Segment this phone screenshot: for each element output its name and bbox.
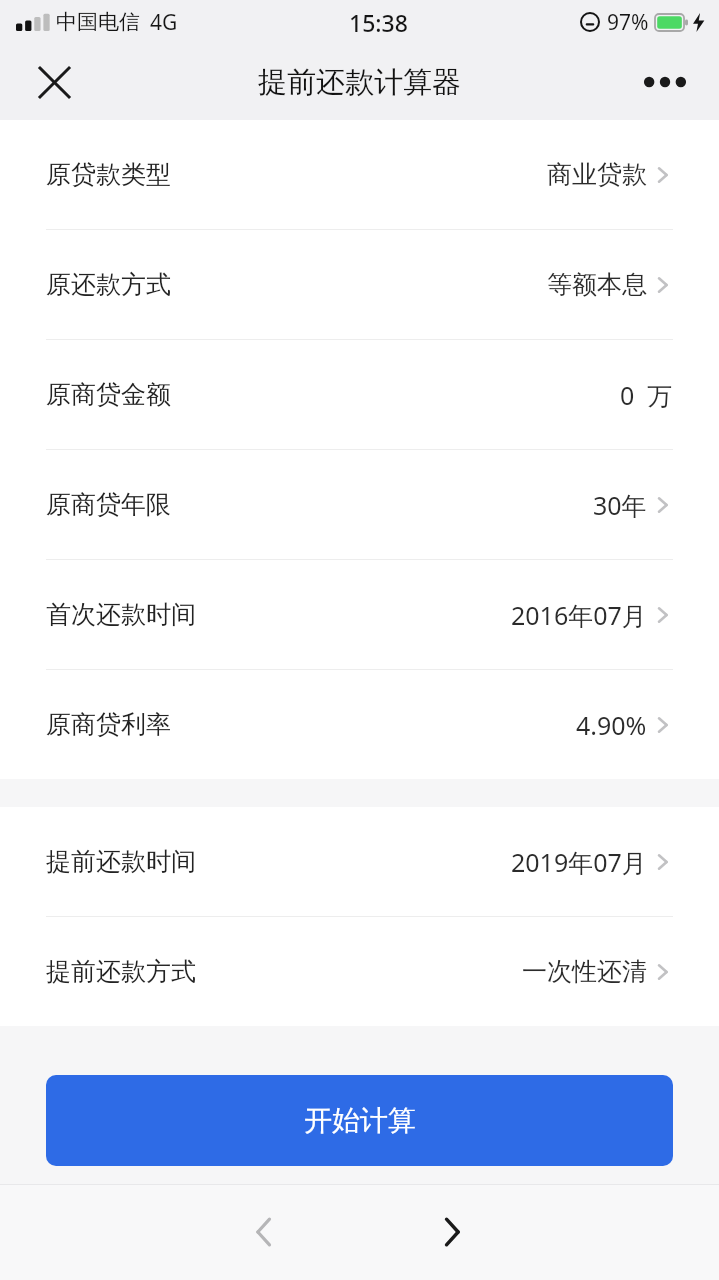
staticText: 中国电信 bbox=[56, 9, 140, 35]
staticText: 开始计算 bbox=[304, 1103, 416, 1138]
staticText: 原商贷金额 bbox=[46, 379, 171, 410]
staticText: 30年 bbox=[593, 488, 647, 522]
staticText: 一次性还清 bbox=[522, 956, 647, 987]
staticText: 97% bbox=[607, 8, 649, 37]
button[interactable]: 提前还款时间 bbox=[0, 807, 719, 916]
button[interactable]: More options bbox=[631, 48, 699, 116]
staticText: 原商贷利率 bbox=[46, 709, 171, 740]
staticText: 提前还款计算器 bbox=[258, 64, 461, 101]
button[interactable]: 提前还款方式 bbox=[0, 917, 719, 1026]
staticText: 原贷款类型 bbox=[46, 159, 171, 190]
staticText: 首次还款时间 bbox=[46, 599, 196, 630]
button[interactable]: Forward bbox=[416, 1196, 488, 1268]
staticText: 等额本息 bbox=[547, 269, 647, 300]
button[interactable]: Close bbox=[20, 48, 88, 116]
staticText: 原还款方式 bbox=[46, 269, 171, 300]
staticText: 0 万 bbox=[620, 378, 673, 412]
staticText: 4.90% bbox=[576, 708, 647, 742]
button[interactable]: 原商贷金额 bbox=[0, 340, 719, 449]
button[interactable]: 原贷款类型 bbox=[0, 120, 719, 229]
button[interactable]: Back bbox=[228, 1196, 300, 1268]
staticText: 2016年07月 bbox=[511, 598, 647, 632]
button[interactable]: 开始计算 bbox=[46, 1075, 673, 1166]
staticText: 15:38 bbox=[349, 7, 408, 38]
staticText: 商业贷款 bbox=[547, 159, 647, 190]
button[interactable]: 原商贷年限 bbox=[0, 450, 719, 559]
button[interactable]: 原商贷利率 bbox=[0, 670, 719, 779]
staticText: 2019年07月 bbox=[511, 845, 647, 879]
button[interactable]: 首次还款时间 bbox=[0, 560, 719, 669]
button[interactable]: 原还款方式 bbox=[0, 230, 719, 339]
staticText: 原商贷年限 bbox=[46, 489, 171, 520]
staticText: 提前还款方式 bbox=[46, 956, 196, 987]
staticText: 4G bbox=[150, 8, 178, 37]
staticText: 提前还款时间 bbox=[46, 846, 196, 877]
